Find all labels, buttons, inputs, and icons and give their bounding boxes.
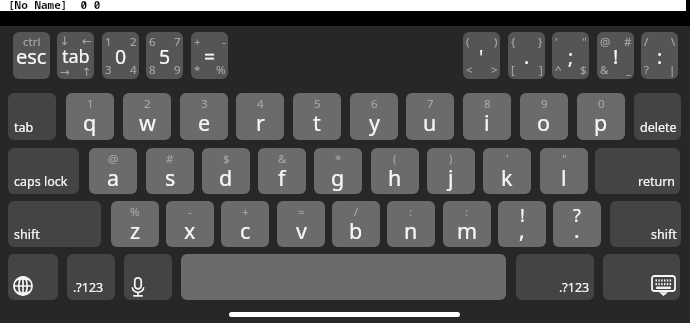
staticText: t (313, 108, 321, 137)
staticText: @ (108, 151, 119, 167)
button[interactable]: ! (498, 201, 546, 247)
button[interactable]: + (221, 201, 269, 247)
staticText: 0 (598, 96, 605, 112)
staticText: 7 (174, 34, 181, 50)
button[interactable]: % (111, 201, 159, 247)
staticText: ) (449, 151, 453, 167)
staticText: [No Name] 0 0 (8, 0, 101, 12)
staticText: c (240, 216, 251, 245)
staticText: k (501, 163, 513, 192)
staticText: 2 (130, 34, 137, 50)
button[interactable]: tab (8, 93, 56, 140)
staticText: : (409, 204, 413, 220)
button[interactable]: ) (427, 148, 475, 194)
staticText: ↑ (82, 65, 92, 78)
button[interactable]: Switch language (8, 254, 58, 300)
button[interactable]: ( (463, 32, 500, 79)
button[interactable]: return (595, 148, 680, 194)
button[interactable]: $ (202, 148, 250, 194)
staticText: % (216, 62, 226, 78)
staticText: - (188, 204, 192, 220)
button[interactable]: delete (634, 93, 681, 140)
staticText: return (638, 173, 676, 190)
button[interactable]: 7 (406, 93, 454, 140)
button[interactable]: ? (553, 201, 601, 247)
staticText: : (465, 204, 469, 220)
button[interactable]: Hide keyboard (603, 254, 680, 300)
staticText: 6 (371, 96, 378, 112)
button[interactable]: ( (371, 148, 419, 194)
button[interactable]: 0 (577, 93, 625, 140)
button[interactable]: @ (597, 32, 634, 79)
staticText: f (278, 163, 286, 192)
staticText: g (331, 163, 345, 192)
staticText: ) (494, 34, 498, 50)
staticText: esc (16, 43, 47, 70)
staticText: 6 (149, 34, 156, 50)
staticText: + (194, 34, 201, 50)
staticText: 8 (149, 62, 156, 78)
button[interactable]: 6 (350, 93, 398, 140)
button[interactable]: 4 (236, 93, 284, 140)
staticText: tab (62, 44, 90, 69)
staticText: ! (613, 43, 619, 70)
button[interactable]: / (332, 201, 380, 247)
staticText: , (519, 216, 525, 245)
button[interactable]: .?123 (67, 254, 115, 300)
staticText: { (511, 34, 516, 50)
button[interactable]: .?123 (516, 254, 594, 300)
staticText: i (484, 108, 490, 137)
button[interactable]: ctrl (13, 32, 50, 79)
staticText: shift (651, 226, 677, 243)
staticText: ← (82, 34, 92, 47)
button[interactable]: / (641, 32, 678, 79)
staticText: + (242, 204, 249, 220)
staticText: 5 (314, 96, 321, 112)
staticText: \ (671, 34, 676, 50)
button[interactable]: : (387, 201, 435, 247)
staticText: u (423, 108, 437, 137)
staticText: 3 (105, 62, 112, 78)
button[interactable]: - (166, 201, 214, 247)
staticText: ( (393, 151, 397, 167)
staticText: l (561, 163, 567, 192)
staticText: ' (555, 34, 558, 50)
staticText: a (107, 163, 120, 192)
button[interactable]: 8 (463, 93, 511, 140)
staticText: = (298, 204, 305, 220)
button[interactable]: 5 (293, 93, 341, 140)
button[interactable]: { (508, 32, 545, 79)
button[interactable]: 6 (146, 32, 183, 79)
button[interactable]: = (277, 201, 325, 247)
staticText: * (194, 62, 201, 78)
button[interactable]: shift (8, 201, 101, 247)
button[interactable]: 1 (102, 32, 139, 79)
button[interactable]: Voice input (124, 254, 172, 300)
button[interactable]: ' (552, 32, 589, 79)
staticText: h (388, 163, 402, 192)
staticText: - (222, 34, 226, 50)
staticText: : (657, 43, 663, 70)
staticText: ' (506, 151, 509, 167)
button[interactable]: * (314, 148, 362, 194)
button[interactable]: + (191, 32, 228, 79)
button[interactable]: # (146, 148, 194, 194)
staticText: $ (223, 151, 230, 167)
button[interactable]: shift (610, 201, 681, 247)
button[interactable]: : (443, 201, 491, 247)
button[interactable]: 3 (180, 93, 228, 140)
staticText: 3 (201, 96, 208, 112)
staticText: shift (14, 226, 40, 243)
button[interactable]: caps lock (8, 148, 79, 194)
staticText: $ (580, 62, 587, 78)
button[interactable]: ' (483, 148, 531, 194)
button[interactable]: ↓ (57, 32, 94, 79)
button[interactable]: 9 (520, 93, 568, 140)
button[interactable]: 2 (123, 93, 171, 140)
button[interactable]: " (540, 148, 588, 194)
button[interactable]: & (258, 148, 306, 194)
button[interactable]: @ (89, 148, 137, 194)
staticText: @ (600, 34, 611, 50)
button[interactable]: 1 (66, 93, 114, 140)
